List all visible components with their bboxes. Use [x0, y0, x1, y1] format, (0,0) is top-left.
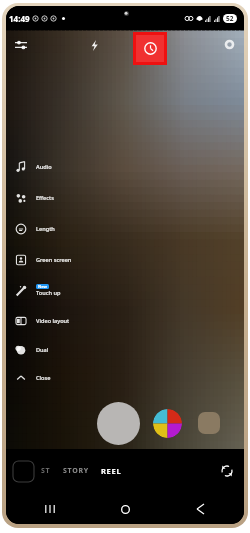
staticText: Dual	[36, 346, 49, 354]
button[interactable]: Length	[10, 213, 55, 244]
staticText: 52	[226, 14, 234, 23]
staticText: 14:49	[9, 13, 30, 24]
button[interactable]: Dual	[10, 336, 49, 364]
button[interactable]: Green screen	[10, 244, 72, 275]
button[interactable]: Flip camera	[217, 461, 237, 481]
button[interactable]: Settings	[217, 32, 241, 56]
staticText: STORY	[63, 466, 89, 476]
button[interactable]: REEL	[98, 466, 125, 476]
staticText: Touch up	[36, 289, 61, 297]
button[interactable]: Home	[113, 497, 137, 521]
button[interactable]: Gallery	[198, 412, 220, 434]
button[interactable]: Video layout	[10, 306, 70, 336]
staticText: ST	[41, 466, 51, 476]
button[interactable]: New	[10, 275, 61, 306]
staticText: Green screen	[36, 256, 72, 264]
button[interactable]: Flash	[82, 33, 106, 57]
button[interactable]: Audio	[10, 151, 52, 182]
button[interactable]: ST	[38, 466, 54, 476]
button[interactable]: Close	[10, 364, 51, 392]
button[interactable]: STORY	[60, 466, 92, 476]
staticText: New	[38, 284, 47, 289]
button[interactable]: Create mode	[13, 461, 34, 482]
button[interactable]: Camera settings	[9, 33, 33, 57]
button[interactable]: Effects	[10, 182, 54, 213]
button[interactable]: Recents	[38, 497, 62, 521]
staticText: Close	[36, 374, 51, 382]
staticText: REEL	[101, 466, 122, 476]
button[interactable]: Back	[188, 497, 212, 521]
staticText: Length	[36, 225, 55, 233]
button[interactable]: Capture	[97, 402, 140, 445]
button[interactable]: Effects	[153, 409, 182, 438]
button[interactable]: Timer	[136, 35, 164, 62]
staticText: Video layout	[36, 317, 70, 325]
staticText: Audio	[36, 163, 52, 171]
staticText: Effects	[36, 194, 54, 202]
